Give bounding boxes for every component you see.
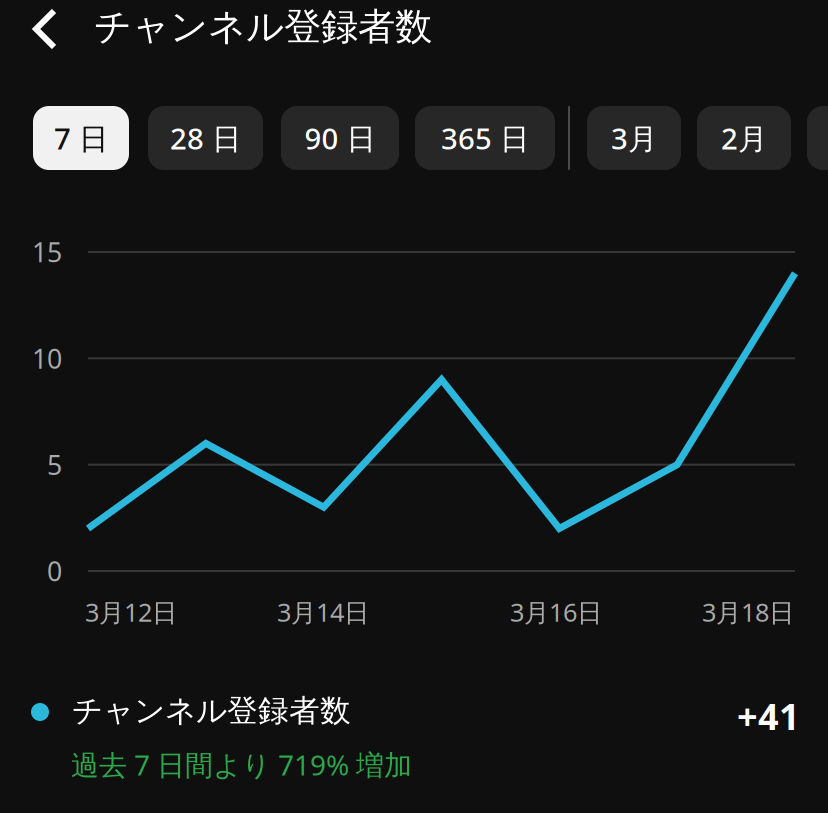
staticText: 3月18日 [702, 595, 794, 629]
staticText: 2月 [721, 118, 767, 157]
staticText: 7 日 [54, 118, 108, 157]
staticText: 90 日 [304, 118, 375, 157]
staticText: 3月12日 [85, 595, 177, 629]
button[interactable]: 2月 [697, 106, 791, 170]
staticText: 5 [47, 447, 62, 482]
staticText: 過去 7 日間より 719% 増加 [71, 746, 412, 783]
staticText: 3月14日 [277, 595, 369, 629]
staticText: +41 [737, 692, 800, 740]
staticText: 0 [47, 553, 62, 589]
staticText: 365 日 [441, 118, 529, 157]
staticText: 10 [32, 341, 62, 376]
button[interactable]: 28 日 [148, 106, 263, 170]
button[interactable]: 90 日 [281, 106, 399, 170]
staticText: 3月16日 [510, 595, 602, 629]
button[interactable]: 7 日 [33, 106, 129, 170]
staticText: 28 日 [170, 118, 241, 157]
button[interactable]: Back [33, 8, 59, 52]
staticText: チャンネル登録者数 [94, 4, 432, 50]
button[interactable]: 1月 [807, 106, 828, 170]
button[interactable]: 365 日 [415, 106, 555, 170]
button[interactable]: 3月 [587, 106, 681, 170]
staticText: 3月 [611, 118, 657, 157]
staticText: 15 [32, 234, 62, 270]
staticText: チャンネル登録者数 [72, 692, 351, 730]
